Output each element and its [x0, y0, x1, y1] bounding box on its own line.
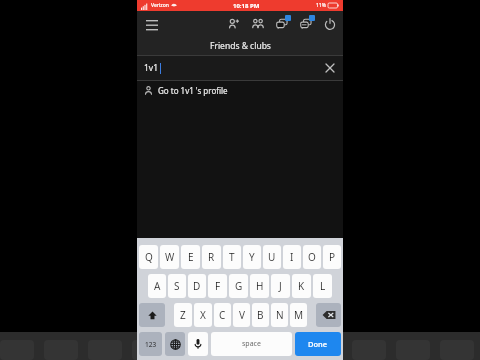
button[interactable]: Menu — [143, 15, 161, 33]
button[interactable]: Backspace — [316, 303, 341, 327]
button[interactable]: B — [252, 303, 269, 327]
button[interactable]: Clear — [323, 61, 337, 75]
staticText: U — [268, 250, 276, 264]
button[interactable]: J — [271, 274, 290, 298]
button[interactable]: 1v1 — [137, 56, 343, 80]
button[interactable]: I — [283, 245, 301, 269]
staticText: R — [208, 250, 215, 264]
button[interactable]: Q — [139, 245, 158, 269]
button[interactable]: space — [211, 332, 292, 356]
button[interactable]: C — [214, 303, 231, 327]
button[interactable]: R — [202, 245, 221, 269]
staticText: D — [193, 279, 201, 293]
button[interactable]: Find friends — [249, 15, 266, 32]
button[interactable]: O — [303, 245, 321, 269]
button[interactable]: K — [292, 274, 311, 298]
staticText: A — [154, 279, 161, 293]
staticText: H — [256, 279, 264, 293]
staticText: E — [188, 250, 194, 264]
staticText: Go to 1v1 's profile — [158, 85, 228, 96]
button[interactable]: Change keyboard — [165, 332, 185, 356]
staticText: 11% — [316, 2, 326, 9]
staticText: X — [200, 308, 206, 322]
staticText: J — [279, 279, 282, 293]
button[interactable]: F — [208, 274, 227, 298]
button[interactable]: Shift — [139, 303, 165, 327]
staticText: I — [290, 250, 294, 264]
button[interactable]: Y — [243, 245, 261, 269]
staticText: 10:18 PM — [233, 2, 260, 10]
button[interactable]: W — [160, 245, 179, 269]
button[interactable]: Messages — [273, 15, 290, 32]
staticText: space — [242, 339, 261, 349]
staticText: N — [276, 308, 284, 322]
staticText: Verizon — [151, 2, 169, 9]
button[interactable]: X — [194, 303, 212, 327]
button[interactable]: N — [271, 303, 288, 327]
staticText: S — [174, 279, 180, 293]
button[interactable]: Go to 1v1 's profile — [137, 81, 343, 100]
button[interactable]: H — [250, 274, 269, 298]
staticText: Friends & clubs — [210, 40, 271, 52]
staticText: 1v1 — [144, 62, 159, 74]
button[interactable]: A — [148, 274, 166, 298]
staticText: C — [219, 308, 226, 322]
button[interactable]: D — [188, 274, 206, 298]
button[interactable]: Add friend — [225, 15, 242, 32]
button[interactable]: Power — [321, 15, 338, 32]
staticText: G — [235, 279, 243, 293]
staticText: P — [329, 250, 336, 264]
button[interactable]: T — [223, 245, 241, 269]
staticText: Q — [145, 250, 153, 264]
button[interactable]: G — [229, 274, 248, 298]
staticText: T — [229, 250, 235, 264]
staticText: K — [298, 279, 305, 293]
button[interactable]: E — [181, 245, 200, 269]
staticText: B — [257, 308, 264, 322]
button[interactable]: Requests — [297, 15, 314, 32]
button[interactable]: Done — [295, 332, 341, 356]
staticText: 123 — [145, 340, 157, 349]
button[interactable]: M — [290, 303, 307, 327]
button[interactable]: Z — [174, 303, 192, 327]
button[interactable]: U — [263, 245, 281, 269]
button[interactable]: S — [168, 274, 186, 298]
button[interactable]: L — [313, 274, 332, 298]
button[interactable]: V — [233, 303, 250, 327]
button[interactable]: Numbers — [139, 332, 162, 356]
button[interactable]: P — [323, 245, 341, 269]
button[interactable]: Dictation — [188, 332, 208, 356]
staticText: W — [165, 250, 175, 264]
staticText: Done — [308, 339, 328, 349]
staticText: Y — [249, 250, 255, 264]
staticText: O — [308, 250, 316, 264]
staticText: M — [294, 308, 304, 322]
staticText: F — [215, 279, 221, 293]
staticText: Z — [180, 308, 186, 322]
staticText: V — [239, 308, 245, 322]
staticText: L — [320, 279, 326, 293]
